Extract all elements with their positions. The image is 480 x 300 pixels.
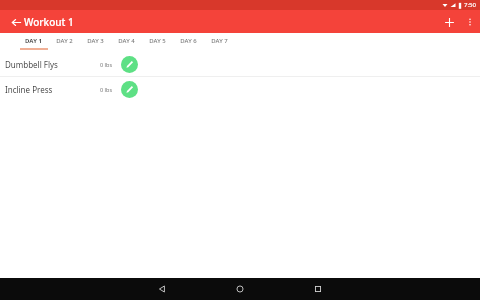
button[interactable]: DAY 2 [49, 33, 80, 52]
button[interactable]: Edit Incline Press [121, 81, 138, 98]
button[interactable]: Recent apps [295, 278, 341, 300]
staticText: Incline Press [5, 84, 53, 95]
staticText: DAY 4 [118, 37, 135, 45]
button[interactable]: DAY 3 [80, 33, 111, 52]
button[interactable]: Back [6, 12, 26, 32]
button[interactable]: Incline Press [0, 77, 480, 101]
staticText: DAY 3 [87, 37, 104, 45]
staticText: DAY 7 [211, 37, 228, 45]
staticText: 0 lbs [100, 61, 113, 68]
button[interactable]: DAY 1 [18, 33, 49, 52]
button[interactable]: Add [438, 11, 460, 33]
button[interactable]: Edit Dumbbell Flys [121, 56, 138, 73]
staticText: DAY 6 [180, 37, 197, 45]
staticText: 0 lbs [100, 86, 113, 93]
staticText: 7:50 [464, 1, 476, 9]
button[interactable]: More options [460, 12, 480, 32]
staticText: DAY 1 [25, 37, 42, 45]
button[interactable]: DAY 5 [142, 33, 173, 52]
staticText: Dumbbell Flys [5, 59, 58, 70]
button[interactable]: Back [139, 278, 185, 300]
staticText: DAY 5 [149, 37, 166, 45]
staticText: Workout 1 [24, 15, 74, 29]
button[interactable]: DAY 7 [204, 33, 235, 52]
button[interactable]: Home [217, 278, 263, 300]
button[interactable]: Dumbbell Flys [0, 52, 480, 76]
staticText: DAY 2 [56, 37, 73, 45]
button[interactable]: DAY 4 [111, 33, 142, 52]
button[interactable]: DAY 6 [173, 33, 204, 52]
